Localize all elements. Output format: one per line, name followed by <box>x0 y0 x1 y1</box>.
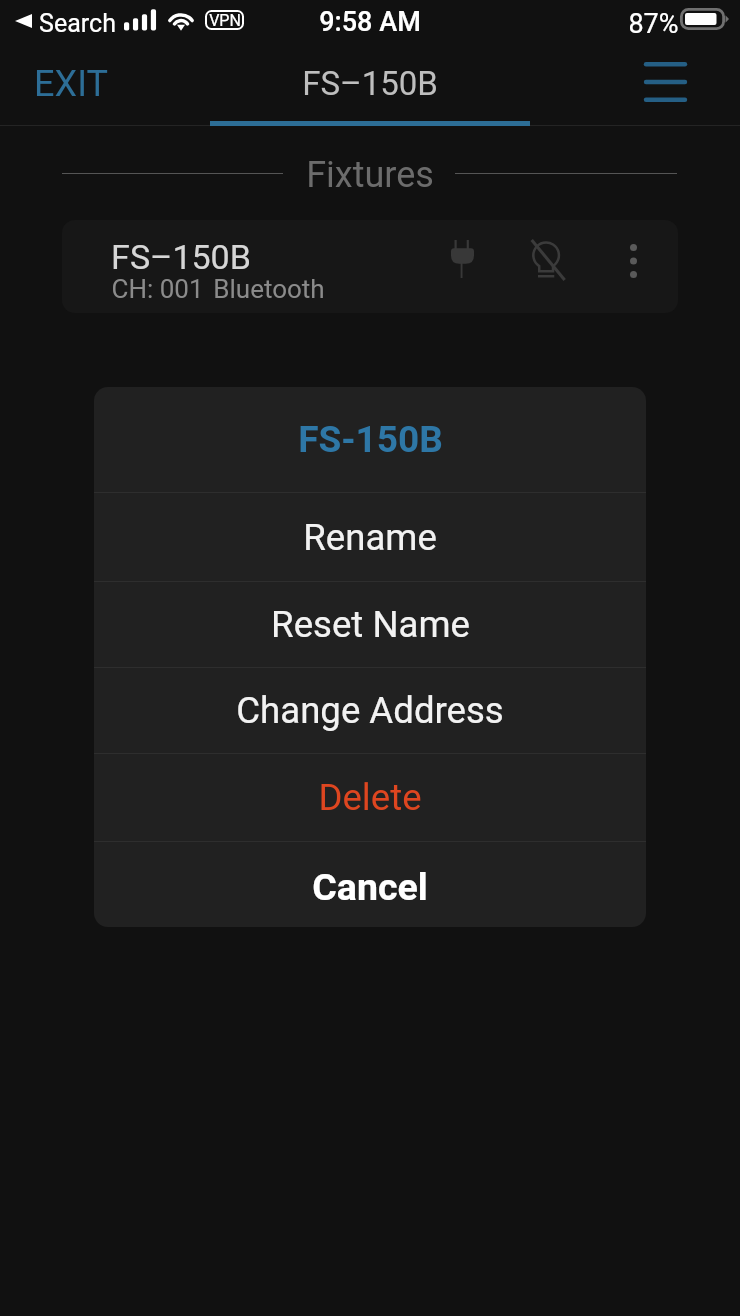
button[interactable]: Cancel <box>94 842 646 927</box>
button[interactable]: Delete <box>94 754 646 841</box>
button[interactable]: Rename <box>94 493 646 581</box>
button[interactable]: Reset Name <box>94 582 646 667</box>
button[interactable]: Power <box>426 228 498 290</box>
button[interactable]: Menu <box>626 46 704 118</box>
staticText: FS–150B <box>111 237 251 277</box>
staticText: 87% <box>628 8 679 40</box>
staticText: FS–150B <box>302 64 438 103</box>
staticText: CH: 001 <box>111 274 204 304</box>
staticText: FS-150B <box>298 418 443 461</box>
button[interactable]: More options <box>602 230 664 292</box>
staticText: Delete <box>318 776 422 819</box>
staticText: Reset Name <box>271 603 470 646</box>
staticText: Cancel <box>312 865 428 909</box>
staticText: Search <box>39 9 116 38</box>
staticText: VPN <box>209 11 241 30</box>
staticText: EXIT <box>34 63 108 105</box>
staticText: Fixtures <box>306 154 434 196</box>
staticText: 9:58 AM <box>319 6 421 38</box>
staticText: Bluetooth <box>213 274 325 304</box>
staticText: Change Address <box>236 689 504 732</box>
button[interactable]: EXIT <box>14 51 128 117</box>
staticText: Rename <box>303 516 437 559</box>
button[interactable]: Light off <box>512 229 584 291</box>
button[interactable]: FS–150B <box>62 220 678 313</box>
button[interactable]: Change Address <box>94 668 646 753</box>
